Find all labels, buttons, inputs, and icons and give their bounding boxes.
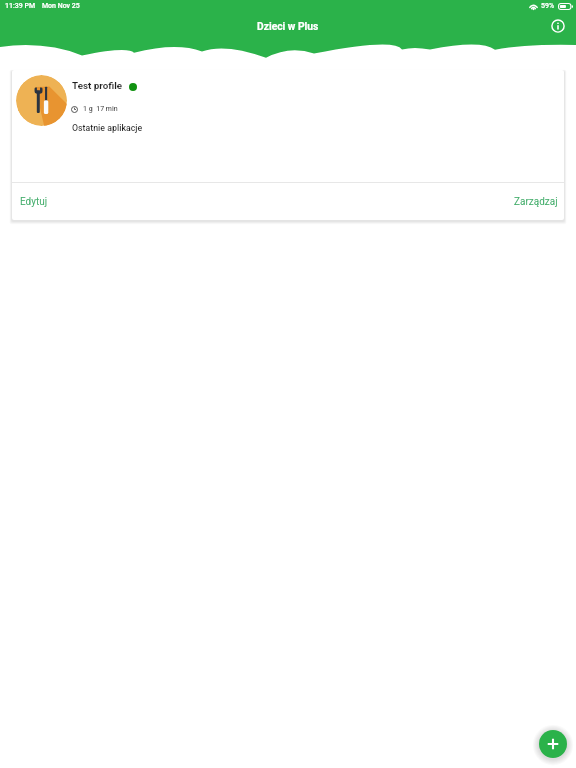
button[interactable]: Edytuj <box>12 189 57 215</box>
staticText: 1 g 17 min <box>83 105 118 113</box>
staticText: Mon Nov 25 <box>42 2 80 10</box>
button[interactable]: Add profile <box>539 730 567 758</box>
staticText: 11:39 PM <box>5 2 36 10</box>
staticText: Ostatnie aplikacje <box>72 123 143 133</box>
button[interactable]: Info <box>546 14 570 38</box>
button[interactable]: Zarządzaj <box>505 189 564 215</box>
staticText: Test profile <box>72 80 123 91</box>
staticText: Zarządzaj <box>514 196 558 208</box>
staticText: Dzieci w Plus <box>257 20 319 32</box>
staticText: 59% <box>541 2 555 10</box>
staticText: Edytuj <box>20 196 48 208</box>
